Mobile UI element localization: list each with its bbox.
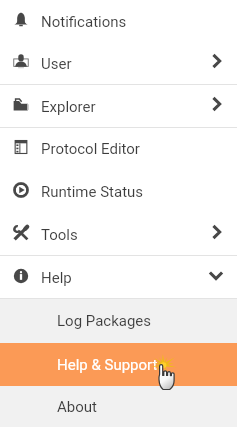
button[interactable]: Explorer xyxy=(0,85,237,128)
staticText: Help & Support xyxy=(57,356,158,374)
other: Expand Explorer xyxy=(200,85,237,128)
button[interactable]: Protocol Editor xyxy=(0,128,237,170)
button[interactable]: User xyxy=(0,43,237,85)
staticText: Runtime Status xyxy=(41,183,144,201)
button[interactable]: Notifications xyxy=(0,0,237,43)
staticText: Protocol Editor xyxy=(41,140,140,158)
staticText: Help xyxy=(41,269,72,287)
button[interactable]: Help xyxy=(0,256,237,299)
button[interactable]: Tools xyxy=(0,213,237,256)
button[interactable]: About xyxy=(0,386,237,427)
button[interactable]: Runtime Status xyxy=(0,170,237,213)
staticText: Tools xyxy=(41,226,78,244)
other: Collapse Help xyxy=(200,256,237,299)
other: Expand User xyxy=(200,43,237,85)
staticText: Log Packages xyxy=(57,312,152,330)
staticText: About xyxy=(57,398,97,416)
staticText: Notifications xyxy=(41,13,127,31)
staticText: Explorer xyxy=(41,98,96,116)
other: Expand Tools xyxy=(200,213,237,256)
button[interactable]: Log Packages xyxy=(0,299,237,343)
button[interactable]: Help & Support xyxy=(0,343,237,386)
staticText: User xyxy=(41,55,72,73)
